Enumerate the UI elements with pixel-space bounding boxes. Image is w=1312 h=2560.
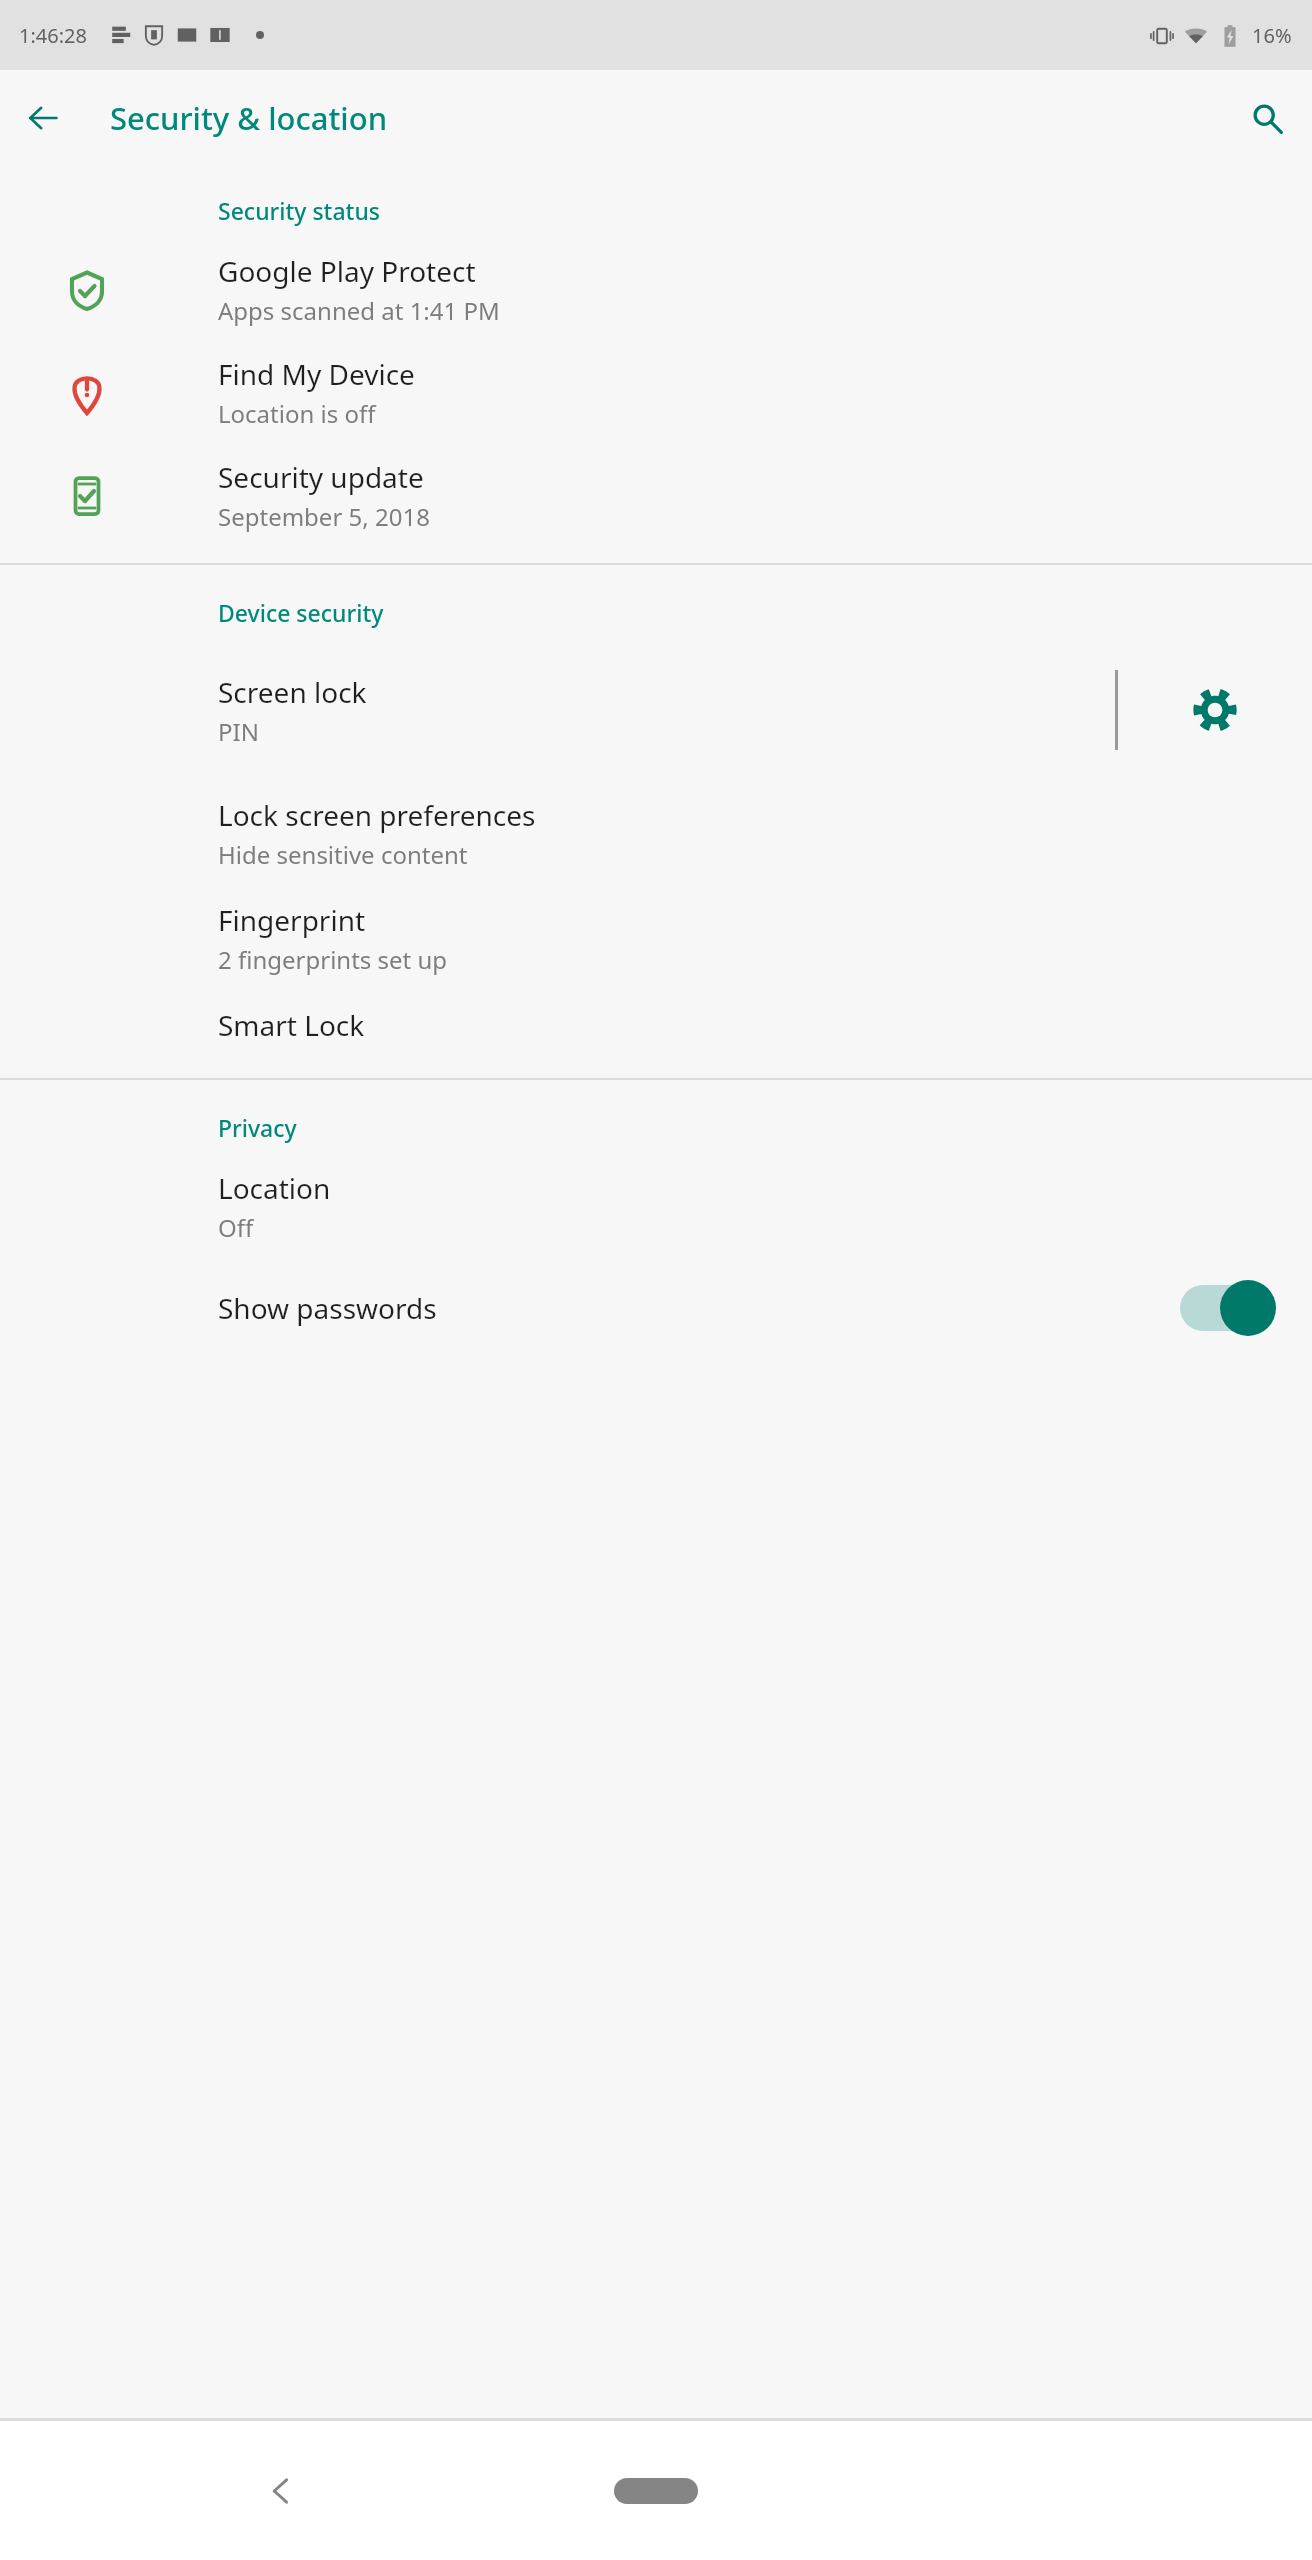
- staticText: 16%: [1252, 22, 1292, 49]
- button[interactable]: Back: [245, 2455, 317, 2527]
- staticText: Device security: [218, 597, 384, 628]
- staticText: 1:46:28: [19, 22, 87, 49]
- staticText: Lock screen preferences: [218, 796, 536, 834]
- button[interactable]: Location: [0, 1169, 1312, 1244]
- button[interactable]: Back: [12, 87, 74, 149]
- button[interactable]: Find My Device: [0, 355, 1312, 430]
- button[interactable]: Home: [591, 2459, 721, 2523]
- staticText: Smart Lock: [218, 1006, 365, 1044]
- staticText: Off: [218, 1211, 254, 1244]
- button[interactable]: Show passwords: [0, 1280, 1312, 1336]
- staticText: PIN: [218, 715, 259, 748]
- staticText: Apps scanned at 1:41 PM: [218, 294, 500, 327]
- staticText: Hide sensitive content: [218, 838, 468, 871]
- staticText: Location is off: [218, 397, 376, 430]
- staticText: Fingerprint: [218, 901, 366, 939]
- staticText: Security status: [218, 195, 380, 226]
- staticText: Screen lock: [218, 673, 367, 711]
- button[interactable]: Screen lock: [0, 673, 1115, 748]
- button[interactable]: Security update: [0, 458, 1312, 533]
- staticText: Location: [218, 1169, 331, 1207]
- button[interactable]: Smart Lock: [0, 1006, 1312, 1044]
- button[interactable]: Google Play Protect: [0, 252, 1312, 327]
- staticText: Show passwords: [218, 1289, 1180, 1327]
- staticText: Privacy: [218, 1112, 297, 1143]
- staticText: Security update: [218, 458, 424, 496]
- staticText: Google Play Protect: [218, 252, 476, 290]
- button[interactable]: Screen lock settings: [1118, 654, 1312, 766]
- staticText: Security & location: [110, 97, 388, 139]
- staticText: Find My Device: [218, 355, 415, 393]
- button[interactable]: Fingerprint: [0, 901, 1312, 976]
- button[interactable]: Search: [1236, 87, 1298, 149]
- staticText: 2 fingerprints set up: [218, 943, 448, 976]
- button[interactable]: Lock screen preferences: [0, 796, 1312, 871]
- staticText: September 5, 2018: [218, 500, 430, 533]
